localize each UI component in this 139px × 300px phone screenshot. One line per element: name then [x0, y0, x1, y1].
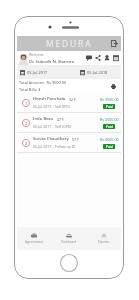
staticText: 57 F	[72, 137, 79, 142]
staticText: Follow up ID	[55, 144, 76, 149]
button[interactable]: 3	[17, 133, 121, 152]
staticText: Patients	[98, 240, 110, 244]
staticText: Dr. Subodh N. Sharma	[29, 58, 74, 64]
staticText: 05-Jul-2017	[27, 70, 48, 75]
staticText: Appointment	[25, 240, 43, 244]
staticText: Rs 2000.00	[100, 117, 119, 122]
staticText: Paid	[106, 104, 113, 109]
staticText: Self (IPD)	[55, 104, 70, 109]
button[interactable]: Calendar	[113, 55, 119, 61]
button[interactable]: Dashboard	[51, 227, 86, 250]
button[interactable]: Appointment	[17, 227, 51, 250]
staticText: 05-Jul-2017	[33, 124, 52, 129]
button[interactable]: Paid	[103, 124, 115, 129]
button[interactable]: 05-Jul-2018	[80, 70, 108, 75]
staticText: MEDURA	[46, 38, 93, 50]
staticText: Dashboard	[61, 240, 76, 244]
staticText: 2	[25, 121, 28, 126]
staticText: 05-Jul-2018	[87, 70, 108, 75]
staticText: 05-Jul-2017	[33, 144, 52, 149]
button[interactable]: Profile	[104, 55, 110, 61]
staticText: Self (OPD)	[55, 124, 72, 129]
staticText: Hitesh Panchala	[33, 96, 66, 102]
staticText: Rs 3500.00	[100, 97, 119, 102]
button[interactable]: Logout	[110, 39, 119, 48]
staticText: 1	[25, 101, 28, 106]
staticText: Welcome	[29, 52, 44, 57]
staticText: Sunita Chaudhary	[33, 136, 69, 142]
button[interactable]: Profile photo	[20, 54, 27, 63]
staticText: Total Amount: Rs 9500.00	[19, 80, 67, 85]
button[interactable]: Share	[95, 55, 101, 61]
staticText: 05-Jul-2017	[33, 104, 52, 109]
button[interactable]: 05-Jul-2017	[20, 70, 48, 75]
staticText: Total Bills: 4	[19, 87, 41, 92]
button[interactable]: 2	[17, 113, 121, 132]
button[interactable]: Paid	[103, 144, 115, 149]
staticText: 32 F	[69, 97, 76, 102]
staticText: 3	[25, 141, 28, 146]
staticText: Indu Basu	[33, 116, 54, 122]
button[interactable]: Print	[109, 82, 117, 90]
staticText: Paid	[106, 124, 113, 129]
staticText: 47 F	[57, 117, 64, 122]
button[interactable]: 1	[17, 93, 121, 112]
staticText: Paid	[106, 144, 113, 149]
staticText: Rs 4000.00	[100, 137, 119, 142]
button[interactable]: Paid	[103, 104, 115, 109]
button[interactable]: Patients	[86, 227, 121, 250]
button[interactable]: Messages	[86, 55, 92, 61]
